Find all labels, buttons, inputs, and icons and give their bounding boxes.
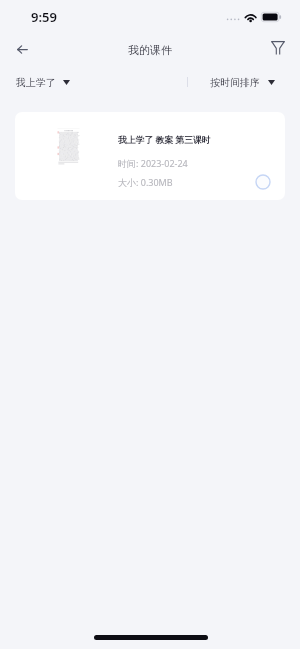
button[interactable]: Select item: [255, 174, 271, 190]
staticText: 时间: 2023-02-24: [118, 157, 188, 169]
staticText: 大小: 0.30MB: [118, 176, 173, 188]
button[interactable]: 我上学了: [16, 71, 70, 93]
button[interactable]: 我上学了 教案 第三课时: [15, 112, 285, 200]
staticText: 我的课件: [128, 43, 172, 57]
button[interactable]: Back: [8, 35, 37, 64]
staticText: 我上学了 教案 第三课时: [118, 134, 211, 146]
staticText: 9:59: [31, 8, 57, 26]
staticText: 我上学了: [16, 76, 56, 89]
button[interactable]: 按时间排序: [210, 71, 275, 93]
staticText: 按时间排序: [210, 76, 260, 89]
button[interactable]: Filter: [264, 34, 292, 62]
